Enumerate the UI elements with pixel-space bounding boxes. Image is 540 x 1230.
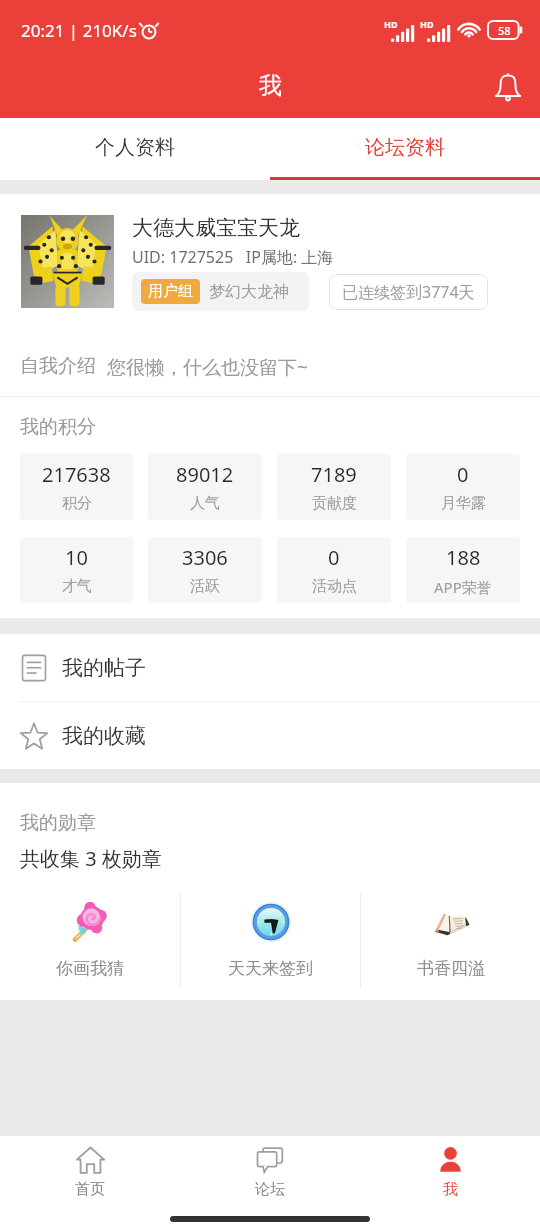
- button[interactable]: 7189: [277, 454, 391, 520]
- staticText: 0: [328, 544, 340, 571]
- button[interactable]: 我: [360, 1136, 540, 1208]
- button[interactable]: 已连续签到3774天: [329, 274, 488, 310]
- staticText: 活跃: [190, 577, 220, 596]
- button[interactable]: 89012: [148, 454, 262, 520]
- staticText: 我的勋章: [20, 811, 96, 835]
- button[interactable]: 我的收藏: [0, 702, 540, 769]
- staticText: 大德大威宝宝天龙: [132, 215, 300, 241]
- staticText: 人气: [190, 494, 220, 513]
- staticText: 89012: [176, 461, 234, 488]
- staticText: 用户组: [148, 282, 193, 301]
- button[interactable]: 个人资料: [0, 118, 270, 177]
- staticText: 共收集 3 枚勋章: [20, 845, 162, 872]
- staticText: 论坛资料: [365, 135, 445, 160]
- staticText: 10: [65, 544, 88, 571]
- button[interactable]: 天天来签到: [181, 893, 360, 988]
- staticText: 20:21 | 210K/s: [21, 19, 137, 42]
- staticText: 您很懒，什么也没留下~: [107, 354, 308, 380]
- staticText: 我的积分: [20, 415, 96, 439]
- staticText: 积分: [62, 494, 92, 513]
- staticText: 已连续签到3774天: [342, 281, 475, 303]
- button[interactable]: 用户组: [132, 272, 309, 311]
- button[interactable]: 论坛: [180, 1136, 360, 1208]
- staticText: 我: [259, 71, 282, 100]
- button[interactable]: 3306: [148, 537, 262, 603]
- staticText: 个人资料: [95, 135, 175, 160]
- staticText: 你画我猜: [56, 958, 124, 979]
- staticText: 贡献度: [312, 494, 357, 513]
- staticText: 188: [446, 544, 481, 571]
- staticText: 才气: [62, 577, 92, 596]
- button[interactable]: 188: [406, 537, 520, 603]
- staticText: 58: [498, 23, 511, 38]
- staticText: 我的帖子: [62, 655, 146, 681]
- staticText: UID: 1727525 IP属地: 上海: [132, 246, 334, 268]
- button[interactable]: 我的帖子: [0, 634, 540, 701]
- button[interactable]: 0: [277, 537, 391, 603]
- staticText: 7189: [311, 461, 357, 488]
- staticText: 我的收藏: [62, 723, 146, 749]
- staticText: 月华露: [441, 494, 486, 513]
- staticText: 自我介绍: [20, 354, 96, 378]
- button[interactable]: 书香四溢: [361, 893, 540, 988]
- staticText: 217638: [42, 461, 111, 488]
- staticText: 天天来签到: [228, 958, 313, 979]
- staticText: 0: [457, 461, 469, 488]
- staticText: 我: [443, 1180, 458, 1199]
- button[interactable]: Notifications: [486, 65, 530, 109]
- staticText: 梦幻大龙神: [209, 282, 289, 302]
- staticText: 3306: [182, 544, 228, 571]
- staticText: 论坛: [255, 1180, 285, 1199]
- staticText: APP荣誉: [434, 577, 492, 597]
- staticText: 活动点: [312, 577, 357, 596]
- button[interactable]: 217638: [20, 454, 133, 520]
- button[interactable]: 首页: [0, 1136, 180, 1208]
- button[interactable]: 10: [20, 537, 133, 603]
- staticText: 书香四溢: [417, 958, 485, 979]
- button[interactable]: 你画我猜: [0, 893, 180, 988]
- staticText: HD: [384, 18, 398, 30]
- button[interactable]: 0: [406, 454, 520, 520]
- button[interactable]: 论坛资料: [270, 118, 540, 177]
- staticText: HD: [420, 18, 434, 30]
- staticText: 首页: [75, 1180, 105, 1199]
